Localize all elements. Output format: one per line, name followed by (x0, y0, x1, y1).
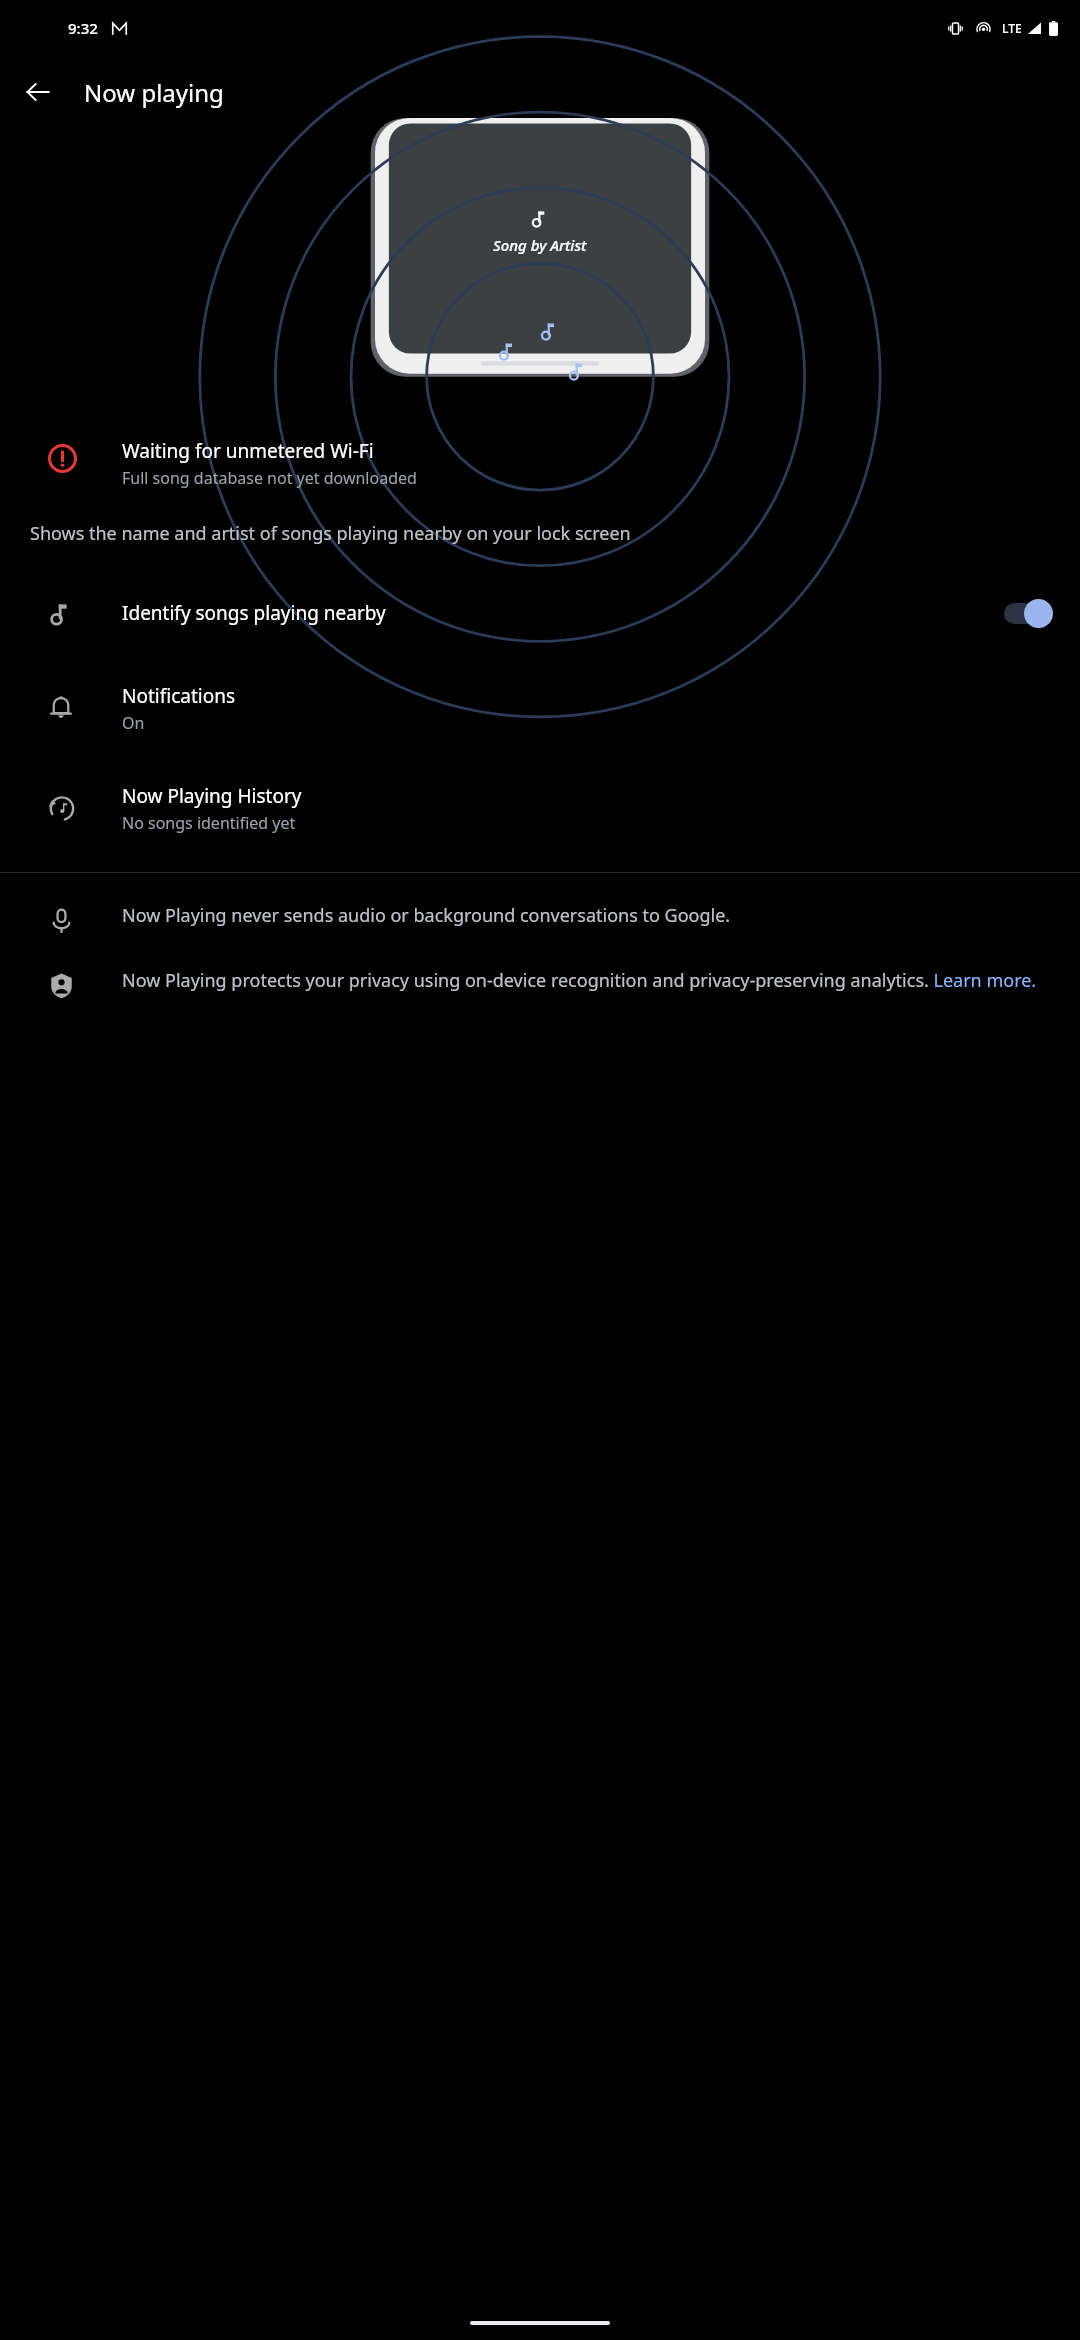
button[interactable]: Now Playing History (0, 758, 1080, 858)
staticText: Song by Artist (493, 235, 587, 255)
staticText: Full song database not yet downloaded (122, 467, 417, 489)
button[interactable]: Back (14, 68, 62, 116)
staticText: 9:32 (68, 18, 98, 38)
staticText: No songs identified yet (122, 812, 296, 834)
staticText: Shows the name and artist of songs playi… (30, 521, 1052, 546)
staticText: LTE (1002, 20, 1022, 36)
button[interactable]: Now Playing protects your privacy using … (0, 962, 1080, 1005)
staticText: Notifications (122, 683, 236, 709)
button[interactable]: Waiting for unmetered Wi-Fi (0, 434, 1080, 493)
staticText: Now Playing protects your privacy using … (122, 968, 1037, 993)
staticText: Now Playing never sends audio or backgro… (122, 903, 731, 928)
button[interactable]: Identify songs playing nearby toggle (1002, 598, 1054, 628)
button[interactable]: Notifications (0, 658, 1080, 758)
staticText: On (122, 712, 145, 734)
staticText: Identify songs playing nearby (122, 600, 1002, 626)
button[interactable]: Identify songs playing nearby (0, 568, 1080, 658)
button[interactable]: Now Playing never sends audio or backgro… (0, 897, 1080, 940)
staticText: Waiting for unmetered Wi-Fi (122, 438, 374, 464)
staticText: Now Playing History (122, 783, 302, 809)
staticText: Now playing (84, 76, 224, 109)
